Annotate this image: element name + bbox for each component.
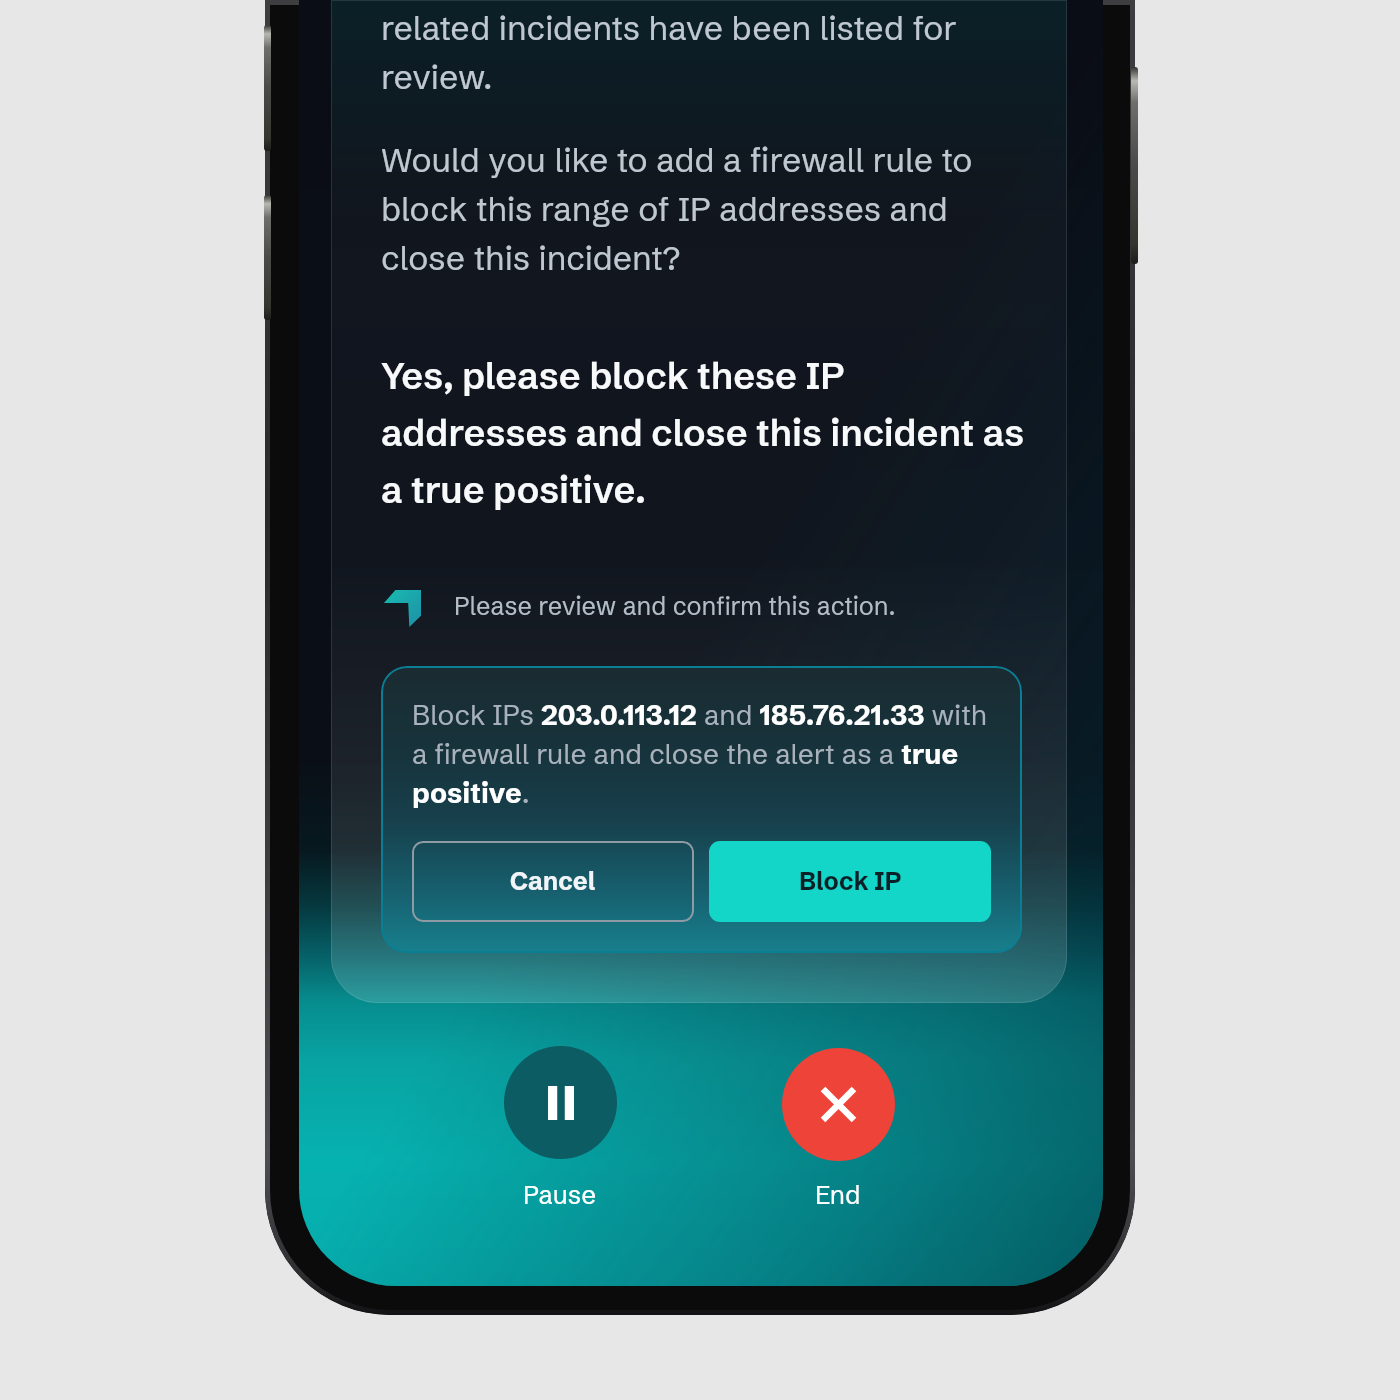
staticText: Please review and confirm this action. [454,590,896,621]
button[interactable]: Pause [504,1046,617,1159]
button[interactable]: Block IP [709,841,991,922]
staticText: Yes, please block these IP addresses and… [381,353,1031,513]
staticText: Block IPs 203.0.113.12 and 185.76.21.33 … [412,698,991,810]
staticText: Block IP [799,866,902,897]
staticText: Pause [523,1179,597,1211]
button[interactable]: End [782,1048,895,1161]
button[interactable]: Cancel [412,841,694,922]
staticText: End [815,1179,861,1211]
staticText: related incidents have been listed for r… [381,7,1027,97]
staticText: Cancel [510,866,596,897]
staticText: Would you like to add a firewall rule to… [381,139,1027,278]
